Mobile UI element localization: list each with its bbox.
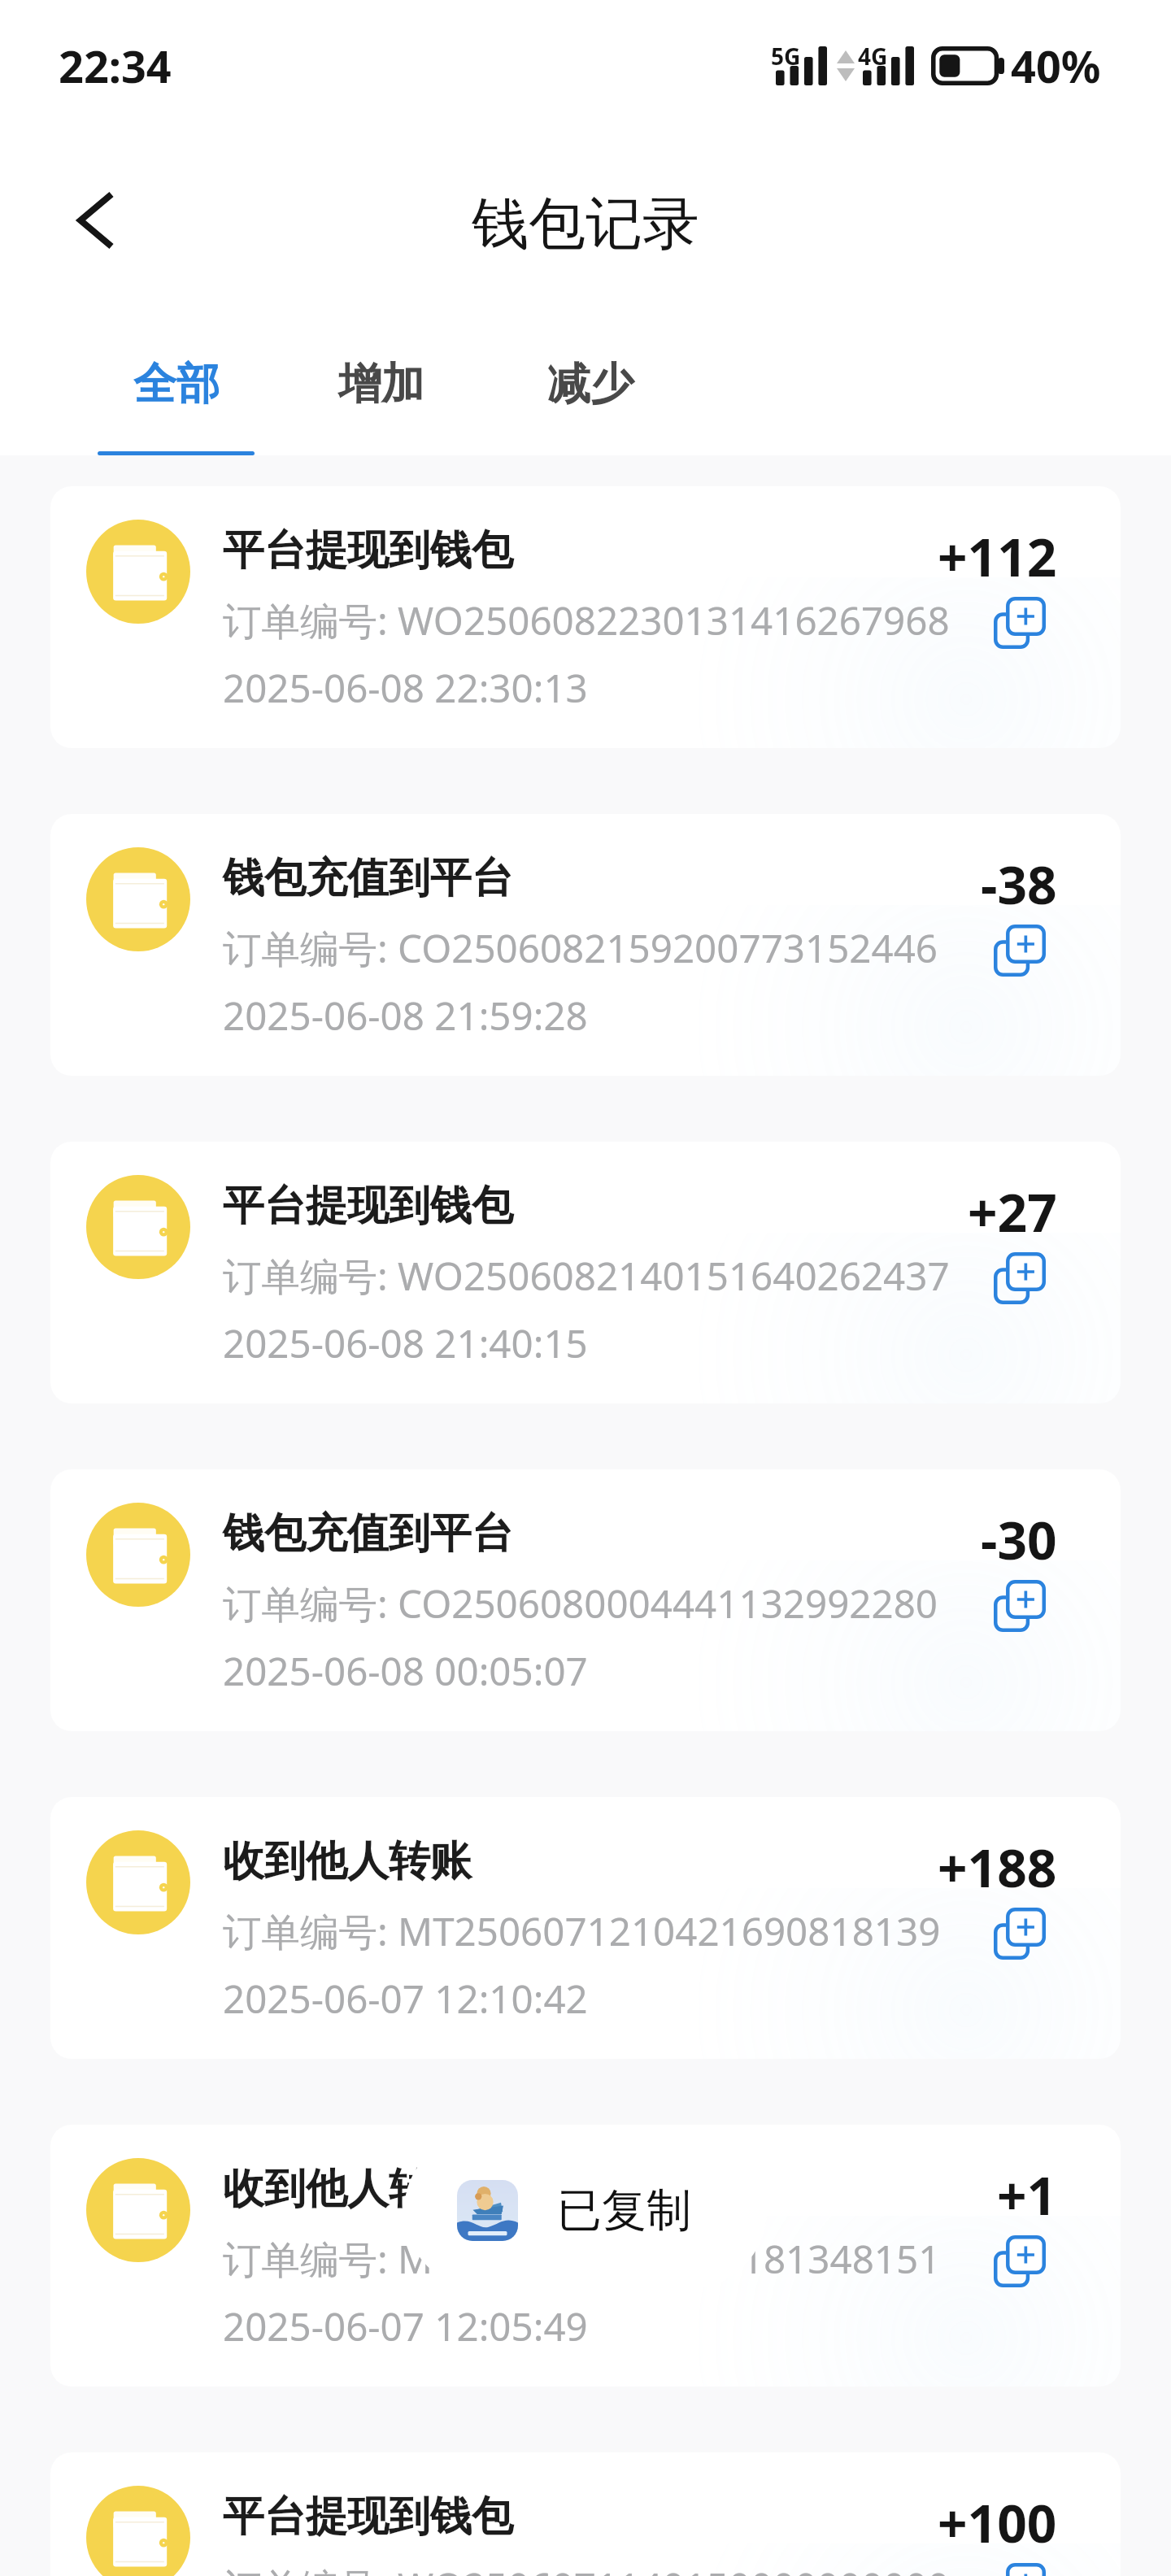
staticText: 22:34 <box>59 36 172 96</box>
button[interactable]: Copy order number <box>994 925 1046 977</box>
button[interactable]: Copy order number <box>994 597 1046 649</box>
staticText: +100 <box>938 2487 1057 2558</box>
staticText: 订单编号: CO2506082159200773152446 <box>223 921 938 974</box>
staticText: -38 <box>981 849 1057 920</box>
button[interactable]: 已复制 <box>404 2132 767 2289</box>
staticText: +188 <box>938 1832 1057 1903</box>
button[interactable]: Copy order number <box>994 1580 1046 1632</box>
staticText: 收到他人转账 <box>223 2163 472 2215</box>
staticText: +1 <box>997 2160 1057 2230</box>
staticText: 钱包充值到平台 <box>223 1508 513 1560</box>
staticText: +112 <box>938 521 1057 592</box>
button[interactable]: 收到他人转账 <box>50 2125 1121 2387</box>
staticText: 2025-06-08 00:05:07 <box>223 1644 588 1697</box>
button[interactable]: Copy order number <box>994 2563 1046 2576</box>
staticText: 订单编号: MT2506071210421690818139 <box>223 1904 941 1957</box>
button[interactable]: 收到他人转账 <box>50 1797 1121 2059</box>
button[interactable]: 钱包充值到平台 <box>50 1469 1121 1731</box>
staticText: 2025-06-07 12:10:42 <box>223 1972 588 2025</box>
staticText: 平台提现到钱包 <box>223 1180 513 1232</box>
staticText: 平台提现到钱包 <box>223 2491 513 2543</box>
staticText: 4G <box>858 41 888 72</box>
staticText: 减少 <box>547 357 633 411</box>
staticText: 5G <box>771 41 801 72</box>
button[interactable]: 平台提现到钱包 <box>50 2452 1121 2576</box>
staticText: 平台提现到钱包 <box>223 524 513 577</box>
staticText: -30 <box>981 1504 1057 1575</box>
staticText: 订单编号: MT2506071205491181348151 <box>223 2232 941 2285</box>
button[interactable]: Copy order number <box>994 2235 1046 2287</box>
button[interactable]: 减少 <box>511 299 668 455</box>
staticText: 订单编号: WO2506082230131416267968 <box>223 594 950 646</box>
staticText: 增加 <box>338 357 424 411</box>
staticText: 2025-06-08 21:40:15 <box>223 1316 588 1369</box>
button[interactable]: Copy order number <box>994 1252 1046 1304</box>
button[interactable]: 钱包充值到平台 <box>50 814 1121 1076</box>
button[interactable]: Copy order number <box>994 1908 1046 1960</box>
button[interactable]: 平台提现到钱包 <box>50 1142 1121 1403</box>
button[interactable]: 平台提现到钱包 <box>50 486 1121 748</box>
staticText: 已复制 <box>557 2182 691 2239</box>
staticText: 订单编号: CO2506080004441132992280 <box>223 1577 938 1630</box>
button[interactable]: 增加 <box>303 299 459 455</box>
button[interactable]: Back <box>39 163 153 277</box>
staticText: 40% <box>1011 36 1101 96</box>
staticText: 2025-06-07 12:05:49 <box>223 2300 588 2352</box>
staticText: 订单编号: WO2506071140150000000000 <box>223 2560 950 2576</box>
button[interactable]: 全部 <box>98 299 255 455</box>
staticText: 钱包记录 <box>472 189 699 260</box>
staticText: 2025-06-08 22:30:13 <box>223 661 588 714</box>
staticText: 钱包充值到平台 <box>223 852 513 904</box>
staticText: 订单编号: WO2506082140151640262437 <box>223 1249 950 1302</box>
staticText: +27 <box>968 1177 1057 1247</box>
staticText: 2025-06-08 21:59:28 <box>223 989 588 1042</box>
staticText: 收到他人转账 <box>223 1835 472 1887</box>
staticText: 全部 <box>133 357 220 411</box>
